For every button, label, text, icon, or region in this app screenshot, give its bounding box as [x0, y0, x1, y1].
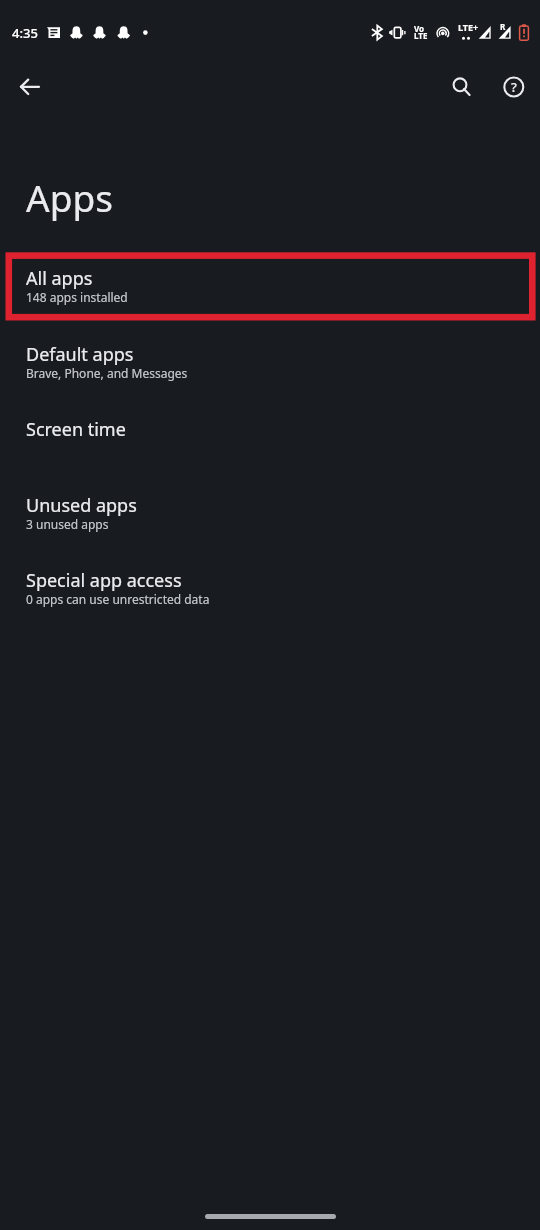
staticText: LTE+ [458, 21, 479, 33]
staticText: Vo [414, 23, 425, 34]
staticText: 4:35 [12, 24, 38, 42]
staticText: 148 apps installed [26, 289, 128, 305]
button[interactable]: Help [489, 63, 537, 111]
staticText: Special app access [26, 568, 182, 593]
staticText: Screen time [26, 417, 126, 442]
staticText: Apps [26, 172, 113, 222]
button[interactable]: Search [438, 63, 486, 111]
button[interactable]: Unused apps [0, 474, 540, 550]
staticText: All apps [26, 266, 93, 291]
button[interactable]: Special app access [0, 549, 540, 625]
button[interactable]: All apps [0, 247, 540, 323]
staticText: Default apps [26, 342, 134, 367]
button[interactable]: Screen time [0, 398, 540, 474]
staticText: 0 apps can use unrestricted data [26, 591, 210, 607]
button[interactable]: Back [5, 63, 53, 111]
staticText: R [500, 21, 506, 32]
staticText: Unused apps [26, 493, 137, 518]
staticText: ? [511, 78, 517, 96]
staticText: LTE [414, 30, 428, 41]
button[interactable]: Default apps [0, 323, 540, 399]
staticText: 3 unused apps [26, 516, 109, 532]
staticText: Brave, Phone, and Messages [26, 365, 188, 381]
